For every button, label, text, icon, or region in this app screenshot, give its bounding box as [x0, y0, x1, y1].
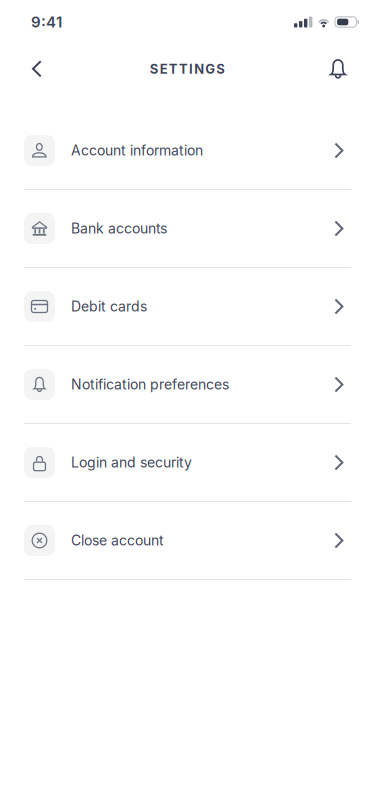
staticText: 9:41	[31, 13, 62, 31]
button[interactable]: Bank accounts	[0, 190, 375, 268]
staticText: Bank accounts	[71, 220, 167, 237]
button[interactable]: Notifications	[316, 47, 360, 91]
button[interactable]: Notification preferences	[0, 346, 375, 424]
button[interactable]: Login and security	[0, 424, 375, 502]
staticText: Close account	[71, 532, 164, 549]
button[interactable]: Debit cards	[0, 268, 375, 346]
staticText: Account information	[71, 142, 203, 159]
staticText: Login and security	[71, 454, 192, 471]
button[interactable]: Account information	[0, 112, 375, 190]
staticText: Notification preferences	[71, 376, 229, 393]
staticText: Debit cards	[71, 298, 147, 315]
button[interactable]: Close account	[0, 502, 375, 580]
staticText: SETTINGS	[150, 61, 225, 77]
button[interactable]: Back	[15, 47, 59, 91]
